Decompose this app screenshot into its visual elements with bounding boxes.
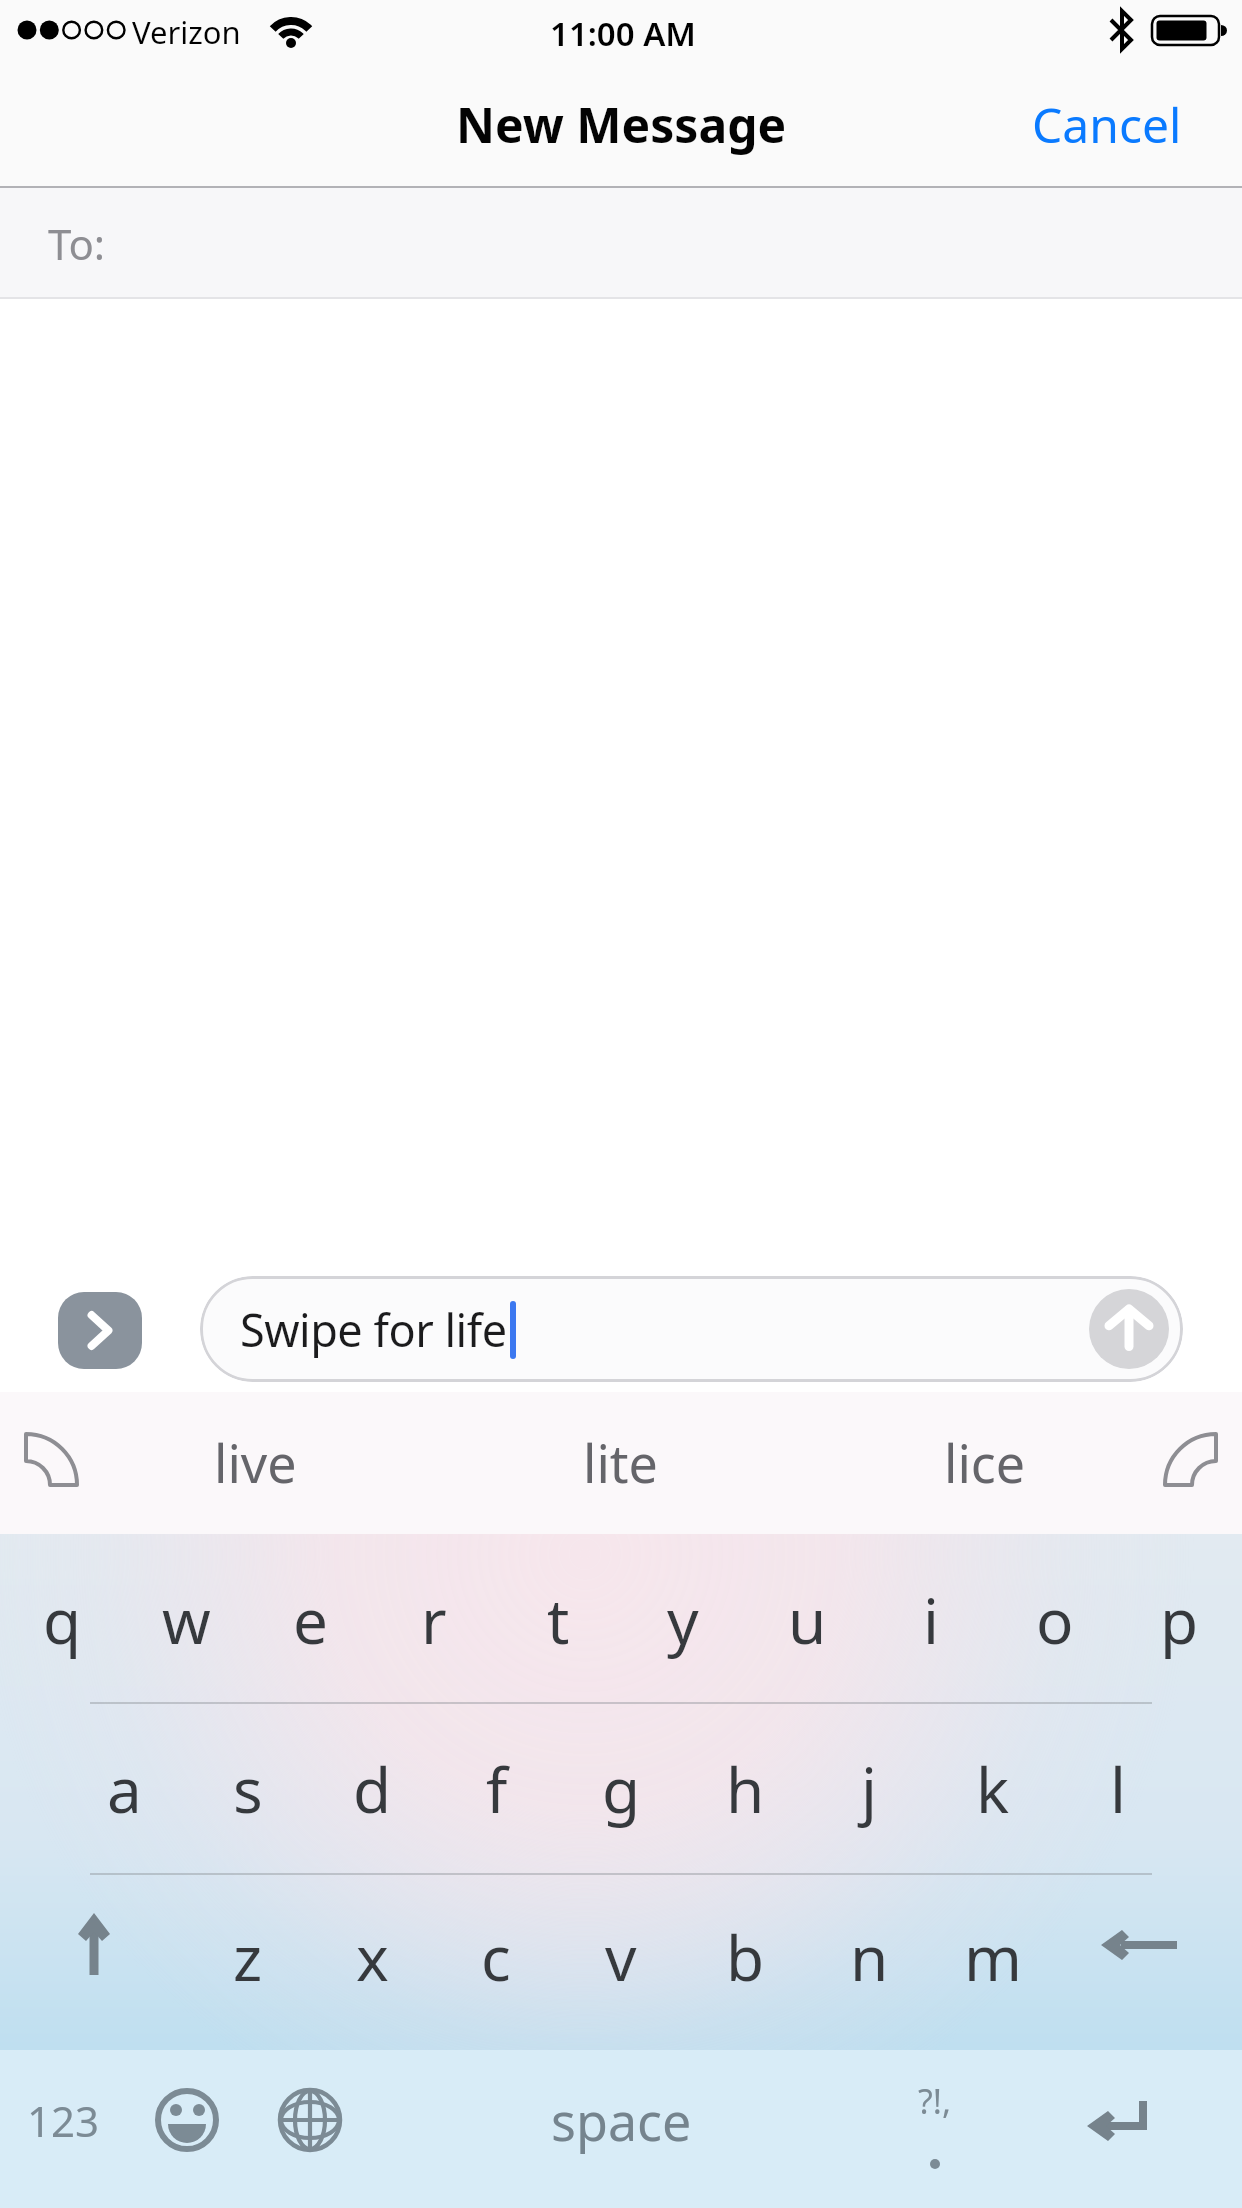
staticText: 11:00 AM (550, 11, 697, 56)
button[interactable] (1057, 2080, 1177, 2160)
button[interactable]: i (876, 1550, 986, 1690)
staticText: z (233, 1915, 263, 1999)
button[interactable]: c (441, 1887, 551, 2027)
button[interactable]: lice (855, 1412, 1115, 1512)
staticText: c (481, 1915, 511, 1999)
staticText: n (850, 1915, 889, 1999)
button[interactable]: r (379, 1550, 489, 1690)
staticText: Cancel (1032, 92, 1182, 157)
staticText: t (547, 1578, 570, 1662)
button[interactable] (58, 1292, 142, 1369)
button[interactable]: Swipe for life (200, 1276, 1183, 1382)
staticText: h (726, 1747, 765, 1831)
button[interactable]: t (503, 1550, 613, 1690)
button[interactable]: space (440, 2070, 802, 2170)
button[interactable]: 123 (18, 2080, 108, 2160)
staticText: l (1110, 1747, 1126, 1831)
button[interactable]: h (690, 1719, 800, 1859)
staticText: w (162, 1578, 211, 1662)
button[interactable]: k (938, 1719, 1048, 1859)
button[interactable]: n (814, 1887, 924, 2027)
button[interactable]: q (7, 1550, 117, 1690)
button[interactable]: ?!, (880, 2070, 990, 2180)
staticText: To: (48, 215, 106, 272)
button[interactable] (44, 1901, 144, 1996)
staticText: New Message (456, 92, 787, 157)
button[interactable]: e (255, 1550, 365, 1690)
button[interactable]: lite (490, 1412, 750, 1512)
staticText: i (923, 1578, 939, 1662)
button[interactable] (1093, 1900, 1203, 1990)
button[interactable]: s (193, 1719, 303, 1859)
button[interactable]: p (1124, 1550, 1234, 1690)
button[interactable]: live (125, 1412, 385, 1512)
button[interactable] (265, 2080, 355, 2160)
button[interactable]: d (317, 1719, 427, 1859)
staticText: d (353, 1747, 392, 1831)
staticText: Verizon (132, 11, 241, 53)
staticText: lite (583, 1427, 658, 1498)
button[interactable]: To: (0, 188, 1242, 298)
staticText: live (214, 1427, 297, 1498)
staticText: lice (944, 1427, 1026, 1498)
button[interactable]: l (1063, 1719, 1173, 1859)
button[interactable]: x (317, 1887, 427, 2027)
staticText: r (421, 1578, 447, 1662)
staticText: g (602, 1747, 641, 1831)
staticText: x (356, 1915, 389, 1999)
staticText: j (861, 1747, 877, 1831)
staticText: b (726, 1915, 765, 1999)
button[interactable]: u (752, 1550, 862, 1690)
button[interactable] (142, 2080, 232, 2160)
staticText: space (551, 2085, 692, 2156)
button[interactable]: f (442, 1719, 552, 1859)
staticText: e (293, 1578, 328, 1662)
button[interactable]: j (814, 1719, 924, 1859)
staticText: k (976, 1747, 1010, 1831)
staticText: o (1036, 1578, 1074, 1662)
staticText: m (964, 1915, 1022, 1999)
button[interactable]: m (938, 1887, 1048, 2027)
staticText: v (605, 1915, 637, 1999)
button[interactable]: w (131, 1550, 241, 1690)
staticText: 123 (27, 2092, 100, 2149)
staticText: f (486, 1747, 508, 1831)
button[interactable]: y (628, 1550, 738, 1690)
button[interactable]: b (690, 1887, 800, 2027)
button[interactable] (1089, 1289, 1169, 1369)
button[interactable]: a (69, 1719, 179, 1859)
staticText: a (107, 1747, 142, 1831)
staticText: Swipe for life (240, 1299, 507, 1360)
staticText: p (1160, 1578, 1199, 1662)
button[interactable]: g (566, 1719, 676, 1859)
button[interactable]: v (566, 1887, 676, 2027)
staticText: s (233, 1747, 263, 1831)
button[interactable]: z (193, 1887, 303, 2027)
button[interactable]: o (1000, 1550, 1110, 1690)
button[interactable]: Cancel (1032, 92, 1182, 157)
staticText: u (788, 1578, 827, 1662)
staticText: y (667, 1578, 699, 1662)
staticText: q (43, 1578, 82, 1662)
staticText: ?!, (918, 2078, 952, 2124)
